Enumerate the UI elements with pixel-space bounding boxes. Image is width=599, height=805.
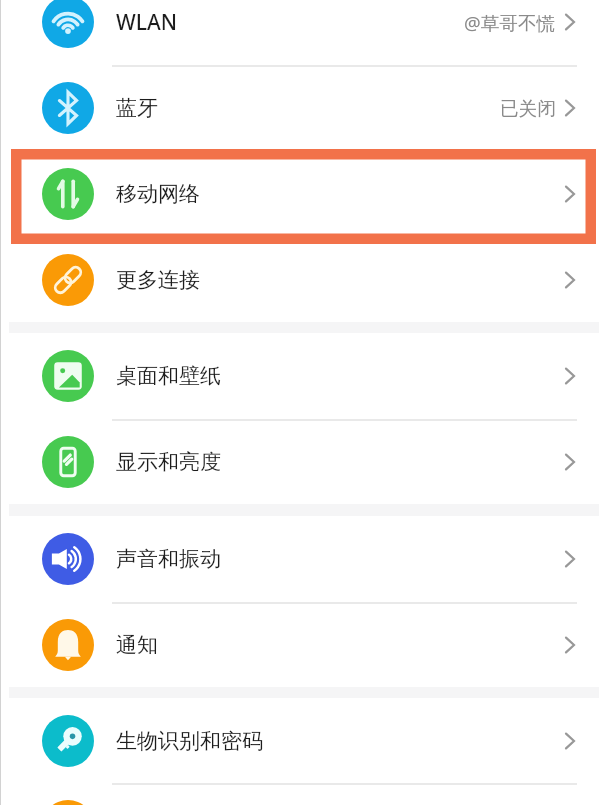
staticText: 通知 [116,632,158,658]
staticText: 桌面和壁纸 [116,363,221,389]
staticText: 移动网络 [116,181,200,207]
staticText: 显示和亮度 [116,449,221,475]
staticText: @草哥不慌 [464,10,556,35]
button[interactable]: 显示和亮度 [0,419,599,505]
staticText: 蓝牙 [116,95,158,121]
button[interactable]: 蓝牙 [0,65,599,151]
button[interactable]: 桌面和壁纸 [0,333,599,419]
staticText: 已关闭 [500,97,556,120]
button[interactable]: WLAN [0,0,599,65]
staticText: 声音和振动 [116,546,221,572]
button[interactable]: 通知 [0,602,599,688]
staticText: 生物识别和密码 [116,728,263,754]
button[interactable]: 声音和振动 [0,516,599,602]
staticText: WLAN [116,8,178,37]
button[interactable]: 移动网络 [0,151,599,237]
button[interactable]: 应用 [0,783,599,805]
button[interactable]: 生物识别和密码 [0,698,599,784]
staticText: 更多连接 [116,267,200,293]
button[interactable]: 更多连接 [0,237,599,323]
